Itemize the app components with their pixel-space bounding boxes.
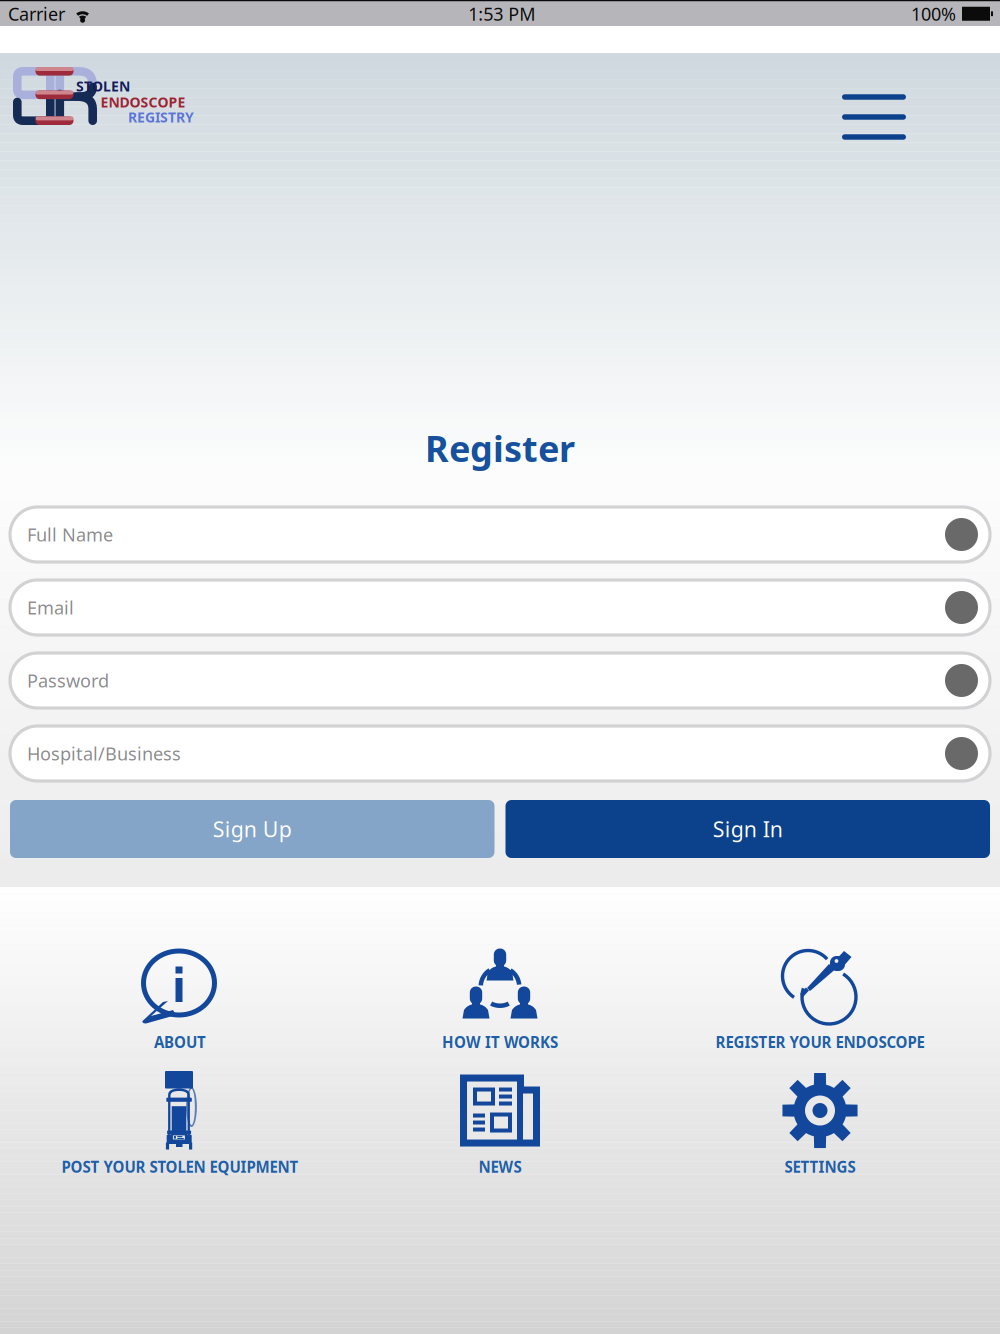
staticText: Email bbox=[27, 595, 74, 620]
staticText: Sign In bbox=[713, 814, 783, 844]
staticText: 100% bbox=[911, 1, 956, 26]
staticText: HOW IT WORKS bbox=[442, 1032, 558, 1052]
button[interactable]: SETTINGS bbox=[660, 1064, 980, 1177]
staticText: POST YOUR STOLEN EQUIPMENT bbox=[61, 1156, 298, 1177]
button[interactable]: Hospital/Business bbox=[10, 726, 990, 781]
staticText: REGISTRY bbox=[128, 107, 194, 127]
button[interactable]: POST YOUR STOLEN EQUIPMENT bbox=[20, 1064, 340, 1177]
button[interactable]: Sign In bbox=[505, 800, 990, 858]
staticText: Carrier bbox=[8, 1, 65, 26]
staticText: ENDOSCOPE bbox=[100, 92, 185, 112]
staticText: Hospital/Business bbox=[27, 741, 181, 766]
staticText: 1:53 PM bbox=[468, 1, 535, 26]
button[interactable]: REGISTER YOUR ENDOSCOPE bbox=[660, 940, 980, 1052]
staticText: Sign Up bbox=[213, 814, 292, 844]
button[interactable]: Password bbox=[10, 653, 990, 708]
staticText: Register bbox=[425, 423, 575, 472]
staticText: REGISTER YOUR ENDOSCOPE bbox=[715, 1032, 924, 1052]
staticText: SETTINGS bbox=[784, 1156, 855, 1177]
button[interactable]: HOW IT WORKS bbox=[340, 940, 660, 1052]
staticText: Password bbox=[27, 668, 109, 693]
button[interactable]: Menu bbox=[830, 82, 918, 152]
staticText: NEWS bbox=[478, 1156, 521, 1177]
button[interactable]: ABOUT bbox=[20, 940, 340, 1052]
staticText: ABOUT bbox=[154, 1032, 206, 1052]
button[interactable]: Full Name bbox=[10, 507, 990, 562]
staticText: Full Name bbox=[27, 522, 113, 547]
button[interactable]: Email bbox=[10, 580, 990, 635]
button[interactable]: NEWS bbox=[340, 1064, 660, 1177]
button[interactable]: Sign Up bbox=[10, 800, 494, 858]
staticText: STOLEN bbox=[76, 76, 130, 96]
